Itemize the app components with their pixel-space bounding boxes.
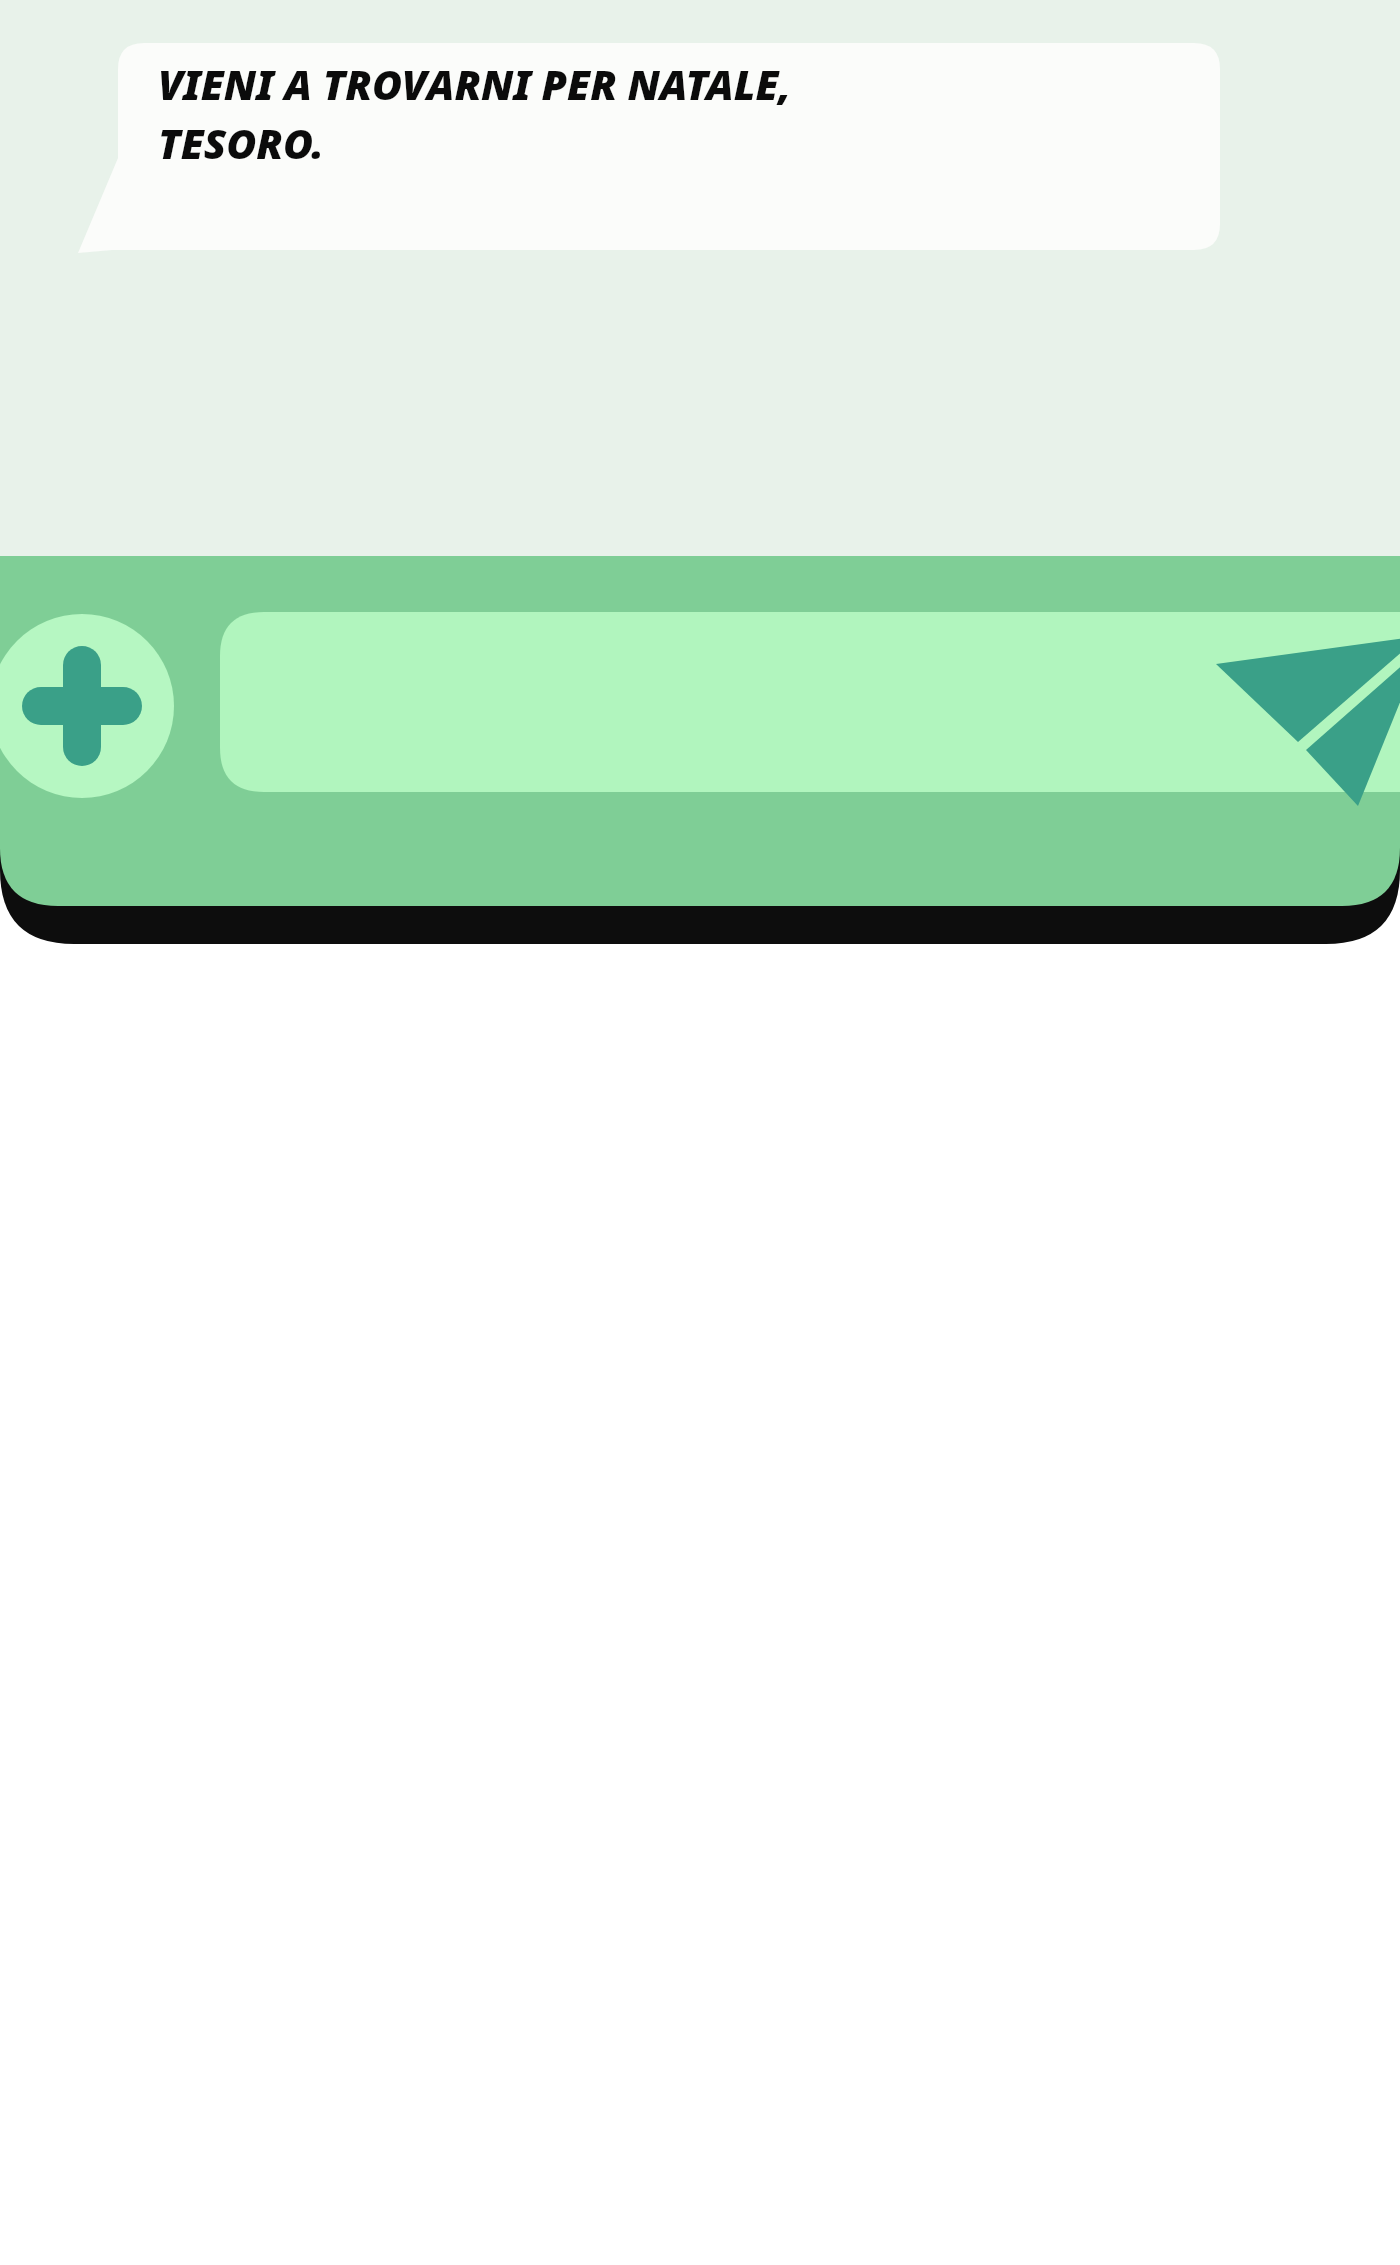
button[interactable]: Add attachment	[0, 614, 174, 798]
button[interactable]: VIENI A TROVARNI PER NATALE, TESORO.	[158, 56, 1178, 236]
button[interactable]: Send	[1230, 620, 1400, 800]
button[interactable]: Message input field	[220, 612, 1400, 792]
staticText: VIENI A TROVARNI PER NATALE, TESORO.	[158, 56, 791, 171]
